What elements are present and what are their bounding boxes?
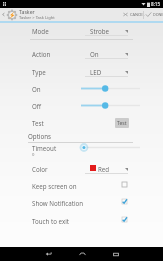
button[interactable]: Recent apps (99, 247, 133, 261)
staticText: Test (32, 119, 44, 127)
staticText: Keep screen on (32, 182, 77, 190)
button[interactable]: Test (115, 118, 129, 128)
staticText: Off (32, 102, 42, 110)
staticText: Red (98, 165, 110, 173)
staticText: Test (117, 120, 127, 127)
staticText: Mode (32, 27, 49, 35)
button[interactable]: Show Notification (0, 194, 163, 211)
staticText: 0 (32, 152, 35, 158)
staticText: On (90, 50, 99, 58)
staticText: Action (32, 50, 51, 58)
other: Navigate up (2, 12, 5, 17)
button[interactable]: Type (0, 63, 163, 80)
staticText: Options (28, 132, 51, 140)
staticText: Color (32, 165, 48, 173)
staticText: LED (90, 68, 102, 76)
button[interactable]: Home (65, 247, 99, 261)
button[interactable]: Back (31, 247, 65, 261)
button[interactable]: Timeout (0, 139, 163, 156)
staticText: Tasker (19, 8, 35, 15)
button[interactable]: CANCEL (120, 8, 142, 21)
staticText: 8:15 (151, 1, 161, 7)
button[interactable]: Action (0, 45, 163, 62)
button[interactable]: DONE (143, 8, 163, 21)
staticText: Touch to exit (32, 217, 70, 225)
staticText: On (32, 85, 41, 93)
button[interactable]: Test (0, 114, 163, 131)
staticText: Tasker > Task Light (19, 15, 55, 21)
staticText: Timeout (32, 144, 57, 152)
button[interactable]: Keep screen on (0, 177, 163, 194)
button[interactable]: Off (0, 97, 163, 114)
staticText: CANCEL (130, 12, 145, 17)
button[interactable]: Mode (0, 22, 163, 39)
staticText: DONE (153, 12, 163, 17)
button[interactable]: On (0, 80, 163, 97)
staticText: Type (32, 68, 46, 76)
button[interactable]: Touch to exit (0, 212, 163, 229)
staticText: Show Notification (32, 199, 84, 207)
staticText: Strobe (90, 27, 110, 35)
button[interactable]: Color (0, 160, 163, 177)
